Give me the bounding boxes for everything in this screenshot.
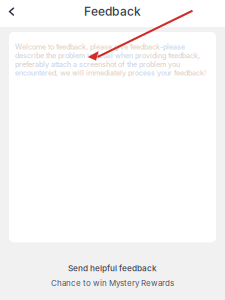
button[interactable]: Send helpful feedback — [68, 263, 157, 273]
button[interactable]: Chance to win Mystery Rewards — [51, 278, 174, 288]
staticText: Send helpful feedback — [68, 263, 157, 273]
staticText: Welcome to feedback, please give feedbac… — [15, 42, 206, 77]
button[interactable]: Back — [0, 0, 27, 26]
staticText: Feedback — [84, 4, 141, 18]
staticText: Chance to win Mystery Rewards — [51, 278, 174, 288]
